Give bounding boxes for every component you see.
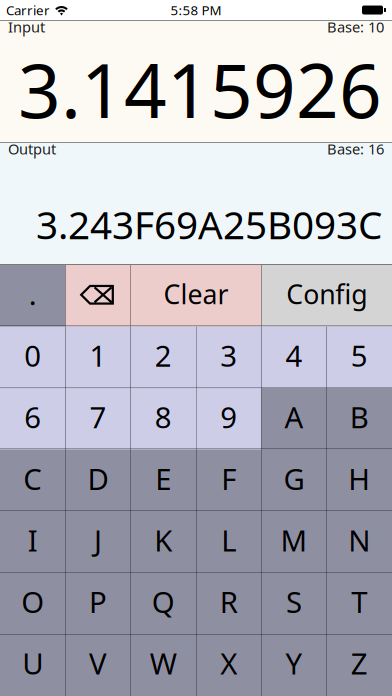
- button[interactable]: 1: [65, 327, 131, 388]
- button[interactable]: W: [131, 634, 196, 696]
- staticText: R: [220, 582, 238, 621]
- staticText: K: [154, 521, 172, 560]
- button[interactable]: 6: [0, 388, 65, 450]
- staticText: Output: [8, 139, 56, 158]
- button[interactable]: F: [196, 450, 261, 511]
- staticText: 5: [351, 336, 368, 375]
- staticText: 4: [285, 336, 302, 375]
- button[interactable]: .: [0, 265, 65, 327]
- staticText: 3.243F69A25B093C: [36, 198, 382, 250]
- staticText: I: [28, 521, 38, 560]
- staticText: P: [89, 582, 107, 621]
- button[interactable]: M: [261, 511, 327, 573]
- button[interactable]: R: [196, 573, 261, 634]
- staticText: T: [351, 582, 367, 621]
- staticText: A: [284, 397, 303, 436]
- staticText: 6: [24, 397, 41, 436]
- staticText: W: [150, 644, 177, 683]
- button[interactable]: H: [327, 450, 392, 511]
- button[interactable]: A: [261, 388, 327, 450]
- staticText: L: [221, 521, 236, 560]
- staticText: C: [23, 459, 42, 498]
- button[interactable]: Y: [261, 634, 327, 696]
- button[interactable]: I: [0, 511, 65, 573]
- staticText: 3.1415926: [18, 39, 382, 139]
- button[interactable]: U: [0, 634, 65, 696]
- button[interactable]: S: [261, 573, 327, 634]
- staticText: 2: [155, 336, 172, 375]
- staticText: G: [283, 459, 304, 498]
- staticText: 8: [155, 397, 172, 436]
- button[interactable]: Z: [327, 634, 392, 696]
- staticText: .: [29, 274, 37, 313]
- staticText: 1: [89, 336, 106, 375]
- staticText: 7: [89, 397, 106, 436]
- staticText: Input: [8, 17, 45, 36]
- button[interactable]: 5: [327, 327, 392, 388]
- staticText: V: [89, 644, 107, 683]
- button[interactable]: 7: [65, 388, 131, 450]
- button[interactable]: L: [196, 511, 261, 573]
- staticText: 9: [220, 397, 237, 436]
- button[interactable]: 3: [196, 327, 261, 388]
- button[interactable]: V: [65, 634, 131, 696]
- staticText: S: [286, 582, 302, 621]
- button[interactable]: 8: [131, 388, 196, 450]
- staticText: H: [348, 459, 370, 498]
- staticText: B: [350, 397, 369, 436]
- staticText: J: [94, 521, 102, 560]
- button[interactable]: T: [327, 573, 392, 634]
- button[interactable]: Clear: [131, 265, 261, 327]
- button[interactable]: 2: [131, 327, 196, 388]
- staticText: Config: [286, 276, 367, 311]
- staticText: O: [21, 582, 44, 621]
- staticText: E: [155, 459, 171, 498]
- staticText: Z: [351, 644, 368, 683]
- staticText: D: [87, 459, 108, 498]
- button[interactable]: 9: [196, 388, 261, 450]
- staticText: U: [22, 644, 43, 683]
- button[interactable]: G: [261, 450, 327, 511]
- button[interactable]: N: [327, 511, 392, 573]
- staticText: X: [220, 644, 237, 683]
- button[interactable]: P: [65, 573, 131, 634]
- staticText: Base: 16: [327, 139, 384, 158]
- button[interactable]: O: [0, 573, 65, 634]
- staticText: 5:58 PM: [170, 1, 221, 19]
- button[interactable]: X: [196, 634, 261, 696]
- staticText: Base: 10: [327, 17, 384, 36]
- staticText: 0: [24, 336, 41, 375]
- button[interactable]: C: [0, 450, 65, 511]
- button[interactable]: E: [131, 450, 196, 511]
- button[interactable]: Q: [131, 573, 196, 634]
- button[interactable]: K: [131, 511, 196, 573]
- button[interactable]: J: [65, 511, 131, 573]
- button[interactable]: Delete: [65, 265, 131, 327]
- staticText: M: [280, 521, 307, 560]
- staticText: Carrier: [6, 1, 50, 19]
- staticText: N: [348, 521, 370, 560]
- button[interactable]: 0: [0, 327, 65, 388]
- button[interactable]: B: [327, 388, 392, 450]
- staticText: Y: [285, 644, 302, 683]
- staticText: F: [221, 459, 236, 498]
- staticText: Clear: [163, 276, 228, 311]
- button[interactable]: 4: [261, 327, 327, 388]
- button[interactable]: D: [65, 450, 131, 511]
- staticText: Q: [152, 582, 175, 621]
- button[interactable]: Config: [261, 265, 392, 327]
- staticText: 3: [220, 336, 237, 375]
